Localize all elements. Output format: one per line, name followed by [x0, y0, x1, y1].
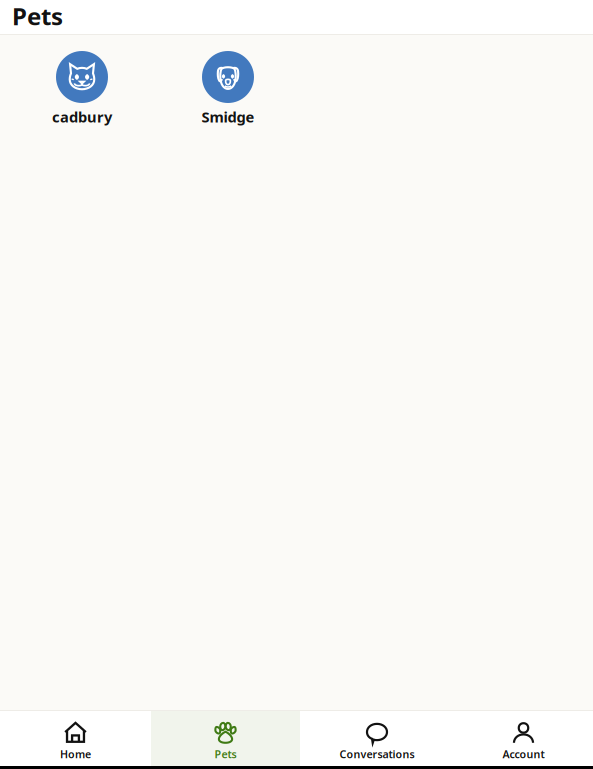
- button[interactable]: cadbury: [9, 51, 155, 126]
- button[interactable]: Conversations: [300, 711, 454, 766]
- staticText: Smidge: [201, 107, 254, 126]
- staticText: Conversations: [339, 747, 414, 761]
- staticText: Home: [60, 747, 91, 761]
- staticText: Pets: [214, 747, 236, 761]
- button[interactable]: Account: [454, 711, 593, 766]
- button[interactable]: Pets: [151, 711, 300, 766]
- button[interactable]: Home: [0, 711, 151, 766]
- staticText: Account: [502, 747, 544, 761]
- staticText: cadbury: [52, 107, 112, 126]
- button[interactable]: Smidge: [155, 51, 301, 126]
- staticText: Pets: [12, 0, 63, 32]
